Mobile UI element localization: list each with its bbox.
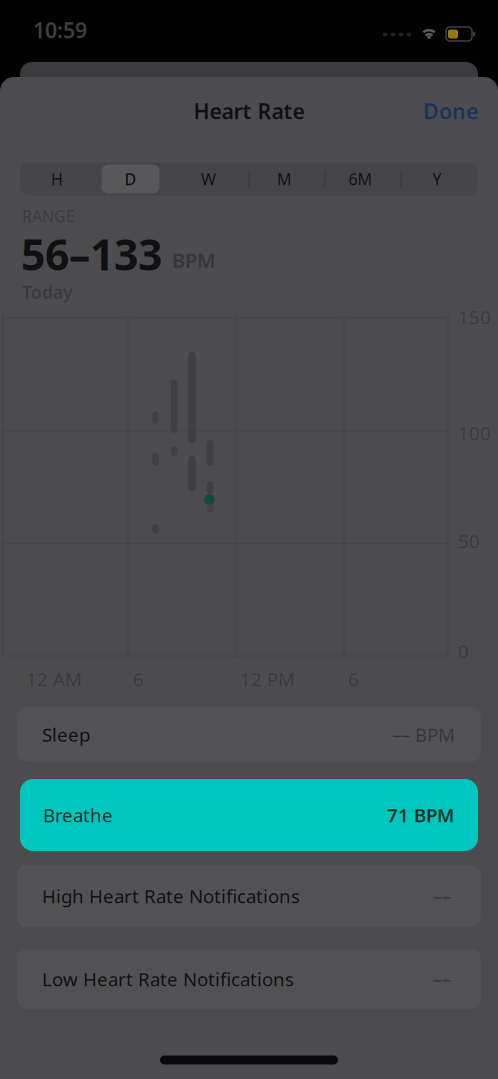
staticText: –– (433, 967, 451, 991)
button[interactable]: High Heart Rate Notifications (17, 865, 481, 927)
button[interactable]: D (101, 164, 159, 193)
staticText: High Heart Rate Notifications (42, 884, 300, 908)
button[interactable]: Breathe (20, 779, 478, 851)
staticText: Done (423, 97, 478, 125)
staticText: Heart Rate (193, 97, 304, 125)
staticText: Breathe (43, 803, 113, 827)
staticText: 6 (348, 667, 359, 691)
button[interactable]: Low Heart Rate Notifications (17, 949, 481, 1009)
staticText: 6 (133, 667, 144, 691)
staticText: RANGE (22, 205, 75, 227)
staticText: 6M (348, 168, 372, 190)
staticText: 100 (458, 421, 491, 445)
staticText: 71 BPM (387, 803, 454, 827)
staticText: W (201, 168, 216, 190)
staticText: –– BPM (392, 722, 455, 747)
staticText: Y (432, 168, 441, 190)
staticText: 50 (458, 529, 480, 553)
staticText: 12 PM (240, 667, 295, 691)
staticText: Low Heart Rate Notifications (42, 967, 294, 991)
staticText: D (124, 168, 136, 190)
staticText: 56–133 (21, 226, 162, 282)
button[interactable]: Y (402, 162, 472, 195)
staticText: BPM (172, 247, 216, 273)
staticText: 12 AM (26, 667, 82, 691)
button[interactable]: Done (423, 97, 478, 125)
staticText: 0 (458, 639, 469, 663)
button[interactable]: W (173, 162, 243, 195)
staticText: –– (433, 884, 451, 908)
staticText: 10:59 (33, 16, 87, 44)
button[interactable]: H (22, 162, 92, 195)
button[interactable]: 6M (325, 162, 395, 195)
staticText: 150 (458, 305, 491, 329)
staticText: Today (22, 280, 72, 303)
staticText: H (51, 168, 63, 190)
button[interactable]: M (249, 162, 319, 195)
staticText: Sleep (42, 722, 90, 747)
staticText: M (277, 168, 292, 190)
button[interactable]: Sleep (17, 707, 481, 762)
